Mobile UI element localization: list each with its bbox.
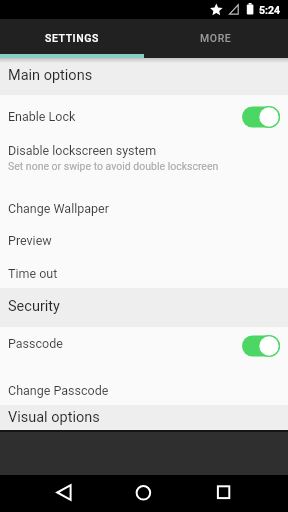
staticText: 5:24 [259, 4, 281, 16]
staticText: Security [8, 298, 60, 315]
staticText: Visual options [8, 409, 100, 426]
staticText: Preview [8, 233, 52, 248]
staticText: Passcode [8, 336, 63, 351]
staticText: Change Wallpaper [8, 201, 109, 216]
staticText: Time out [8, 266, 58, 281]
staticText: MORE [200, 32, 232, 44]
staticText: Disable lockscreen system [8, 143, 157, 158]
staticText: SETTINGS [45, 32, 99, 44]
staticText: Set none or swipe to avoid double locksc… [8, 160, 219, 172]
staticText: Change Passcode [8, 383, 109, 398]
staticText: Main options [8, 67, 93, 84]
staticText: Enable Lock [8, 109, 76, 124]
